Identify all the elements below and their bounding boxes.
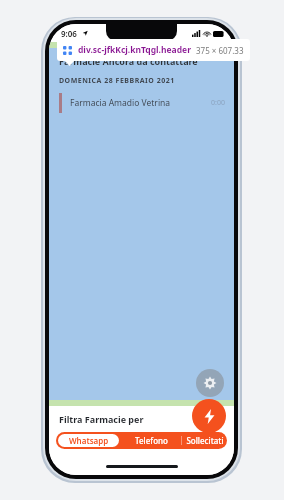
- button[interactable]: Azione rapida: [192, 399, 226, 433]
- staticText: Telefono: [135, 435, 168, 446]
- staticText: Farmacie Ancora da contattare: [59, 55, 198, 67]
- staticText: 375 × 607.33: [196, 45, 244, 56]
- staticText: Farmacia Amadio Vetrina: [70, 97, 171, 109]
- staticText: Whatsapp: [69, 435, 109, 446]
- button[interactable]: Impostazioni: [196, 369, 224, 397]
- staticText: Filtra Farmacie per: [59, 413, 144, 425]
- staticText: DOMENICA 28 FEBBRAIO 2021: [59, 76, 175, 86]
- button[interactable]: Telefono: [121, 432, 181, 449]
- staticText: div.sc-jfkKcj.knTqgl.header: [78, 44, 191, 56]
- button[interactable]: Farmacia Amadio Vetrina: [49, 93, 234, 113]
- staticText: 9:06: [61, 28, 77, 39]
- button[interactable]: Sollecitati: [182, 432, 227, 449]
- staticText: 0:00: [211, 98, 225, 108]
- staticText: Sollecitati: [186, 435, 224, 446]
- button[interactable]: Whatsapp: [58, 434, 119, 447]
